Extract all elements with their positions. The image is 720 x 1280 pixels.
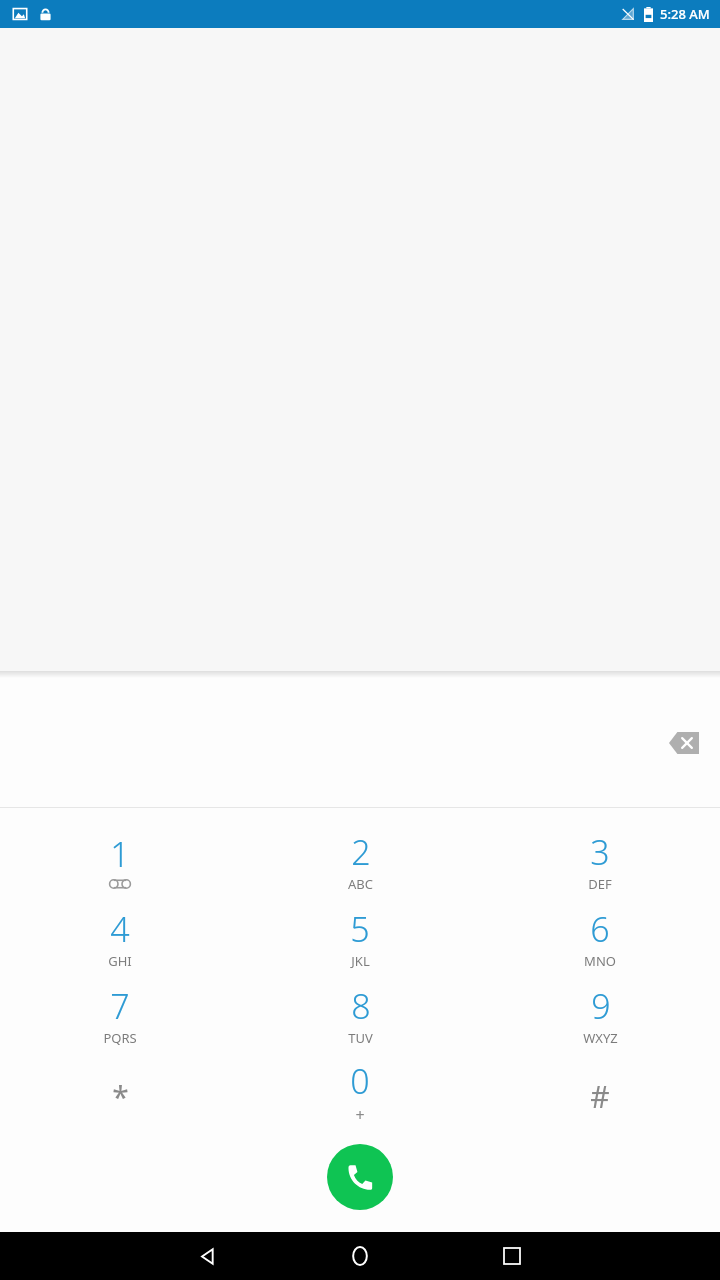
staticText: GHI [108,952,132,970]
button[interactable]: 4 [0,899,240,976]
staticText: 0 [350,1058,370,1104]
staticText: 7 [110,983,130,1029]
button[interactable]: * [0,1053,240,1130]
staticText: PQRS [103,1029,137,1047]
staticText: * [112,1076,129,1117]
button[interactable]: Back [172,1232,244,1280]
staticText: 1 [110,831,130,877]
staticText: JKL [351,952,370,970]
staticText: WXYZ [583,1029,618,1047]
button[interactable]: Backspace [656,715,712,771]
staticText: + [355,1104,365,1126]
button[interactable]: 1 [0,822,240,899]
button[interactable]: 8 [240,976,480,1053]
staticText: 4 [110,906,130,952]
button[interactable]: 7 [0,976,240,1053]
staticText: 6 [590,906,610,952]
button[interactable]: Recents [476,1232,548,1280]
staticText: MNO [584,952,616,970]
staticText: DEF [588,875,612,893]
button[interactable]: Home [324,1232,396,1280]
staticText: 5 [350,906,370,952]
button[interactable]: 6 [480,899,720,976]
button[interactable]: 0 [240,1053,480,1130]
staticText: 3 [590,829,610,875]
button[interactable]: 2 [240,822,480,899]
staticText: 5:28 AM [660,5,710,23]
button[interactable]: # [480,1053,720,1130]
staticText: # [590,1076,610,1117]
staticText: TUV [348,1029,373,1047]
button[interactable]: 9 [480,976,720,1053]
staticText: 2 [351,829,371,875]
staticText: ABC [348,875,373,893]
button[interactable]: Call [327,1144,393,1210]
staticText: 8 [351,983,371,1029]
staticText: 9 [591,983,611,1029]
button[interactable]: 3 [480,822,720,899]
button[interactable]: 5 [240,899,480,976]
